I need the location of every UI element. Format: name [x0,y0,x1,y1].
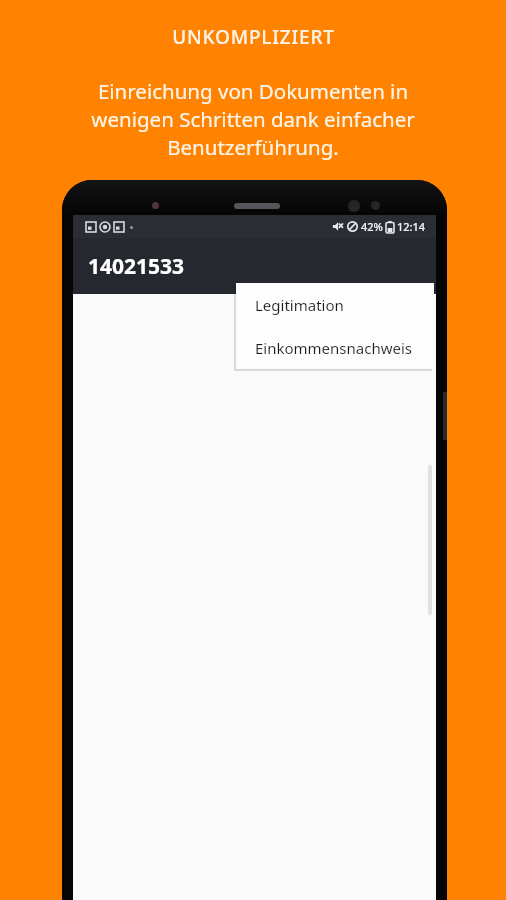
button[interactable]: Legitimation [236,283,434,326]
staticText: 42% [361,219,383,234]
staticText: Legitimation [255,295,344,315]
staticText: Einkommensnachweis [255,338,412,358]
staticText: 14021533 [88,252,185,281]
button[interactable]: Einkommensnachweis [236,326,434,369]
staticText: Einreichung von Dokumenten in wenigen Sc… [18,77,488,161]
staticText: UNKOMPLIZIERT [172,24,335,50]
button[interactable]: 14021533 [73,238,436,294]
staticText: 12:14 [397,219,426,234]
